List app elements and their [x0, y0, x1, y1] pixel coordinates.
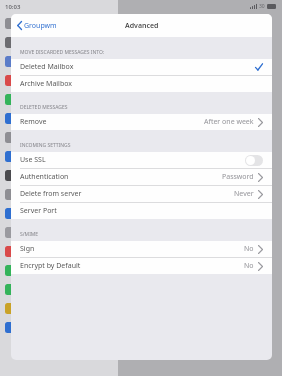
staticText: 10:03 — [5, 3, 21, 11]
staticText: DELETED MESSAGES — [20, 104, 68, 111]
staticText: Battery — [21, 153, 42, 161]
staticText: No — [244, 261, 254, 271]
staticText: Wallet — [21, 210, 39, 218]
staticText: Password — [222, 172, 254, 182]
staticText: Deleted Mailbox — [20, 62, 74, 72]
button[interactable]: Remove — [11, 114, 272, 130]
button[interactable]: Use SSL toggle — [245, 155, 263, 166]
staticText: Advanced — [125, 21, 159, 31]
staticText: 30 — [259, 3, 265, 10]
staticText: Passwords — [21, 229, 52, 237]
staticText: Archive Mailbox — [20, 79, 73, 89]
staticText: After one week — [204, 117, 254, 127]
staticText: S/MIME — [20, 231, 39, 238]
button[interactable]: Sign — [11, 241, 272, 258]
staticText: Groupwm — [24, 21, 57, 31]
staticText: Sign — [20, 244, 35, 254]
staticText: Accessibility — [21, 58, 55, 66]
button[interactable]: Delete from server — [11, 186, 272, 203]
button[interactable]: Encrypt by Default — [11, 258, 272, 274]
staticText: App Store — [21, 191, 49, 199]
staticText: Mail — [21, 248, 33, 256]
button[interactable]: Use SSL — [11, 152, 272, 169]
button[interactable]: Authentication — [11, 169, 272, 186]
staticText: General — [21, 20, 44, 28]
staticText: INCOMING SETTINGS — [20, 142, 71, 149]
staticText: MOVE DISCARDED MESSAGES INTO: — [20, 49, 105, 56]
staticText: Wallpaper — [21, 77, 50, 85]
staticText: Encrypt by Default — [20, 261, 81, 271]
staticText: Remove — [20, 117, 47, 127]
staticText: Delete from server — [20, 189, 82, 199]
staticText: Use SSL — [20, 155, 46, 165]
staticText: Never — [234, 189, 254, 199]
staticText: Authentication — [20, 172, 69, 182]
staticText: Contacts — [21, 267, 46, 275]
staticText: Apple Pencil — [21, 115, 56, 123]
button[interactable]: Deleted Mailbox — [11, 59, 272, 76]
button[interactable]: Server Port — [11, 203, 272, 219]
staticText: Server Port — [20, 206, 57, 216]
button[interactable]: Archive Mailbox — [11, 76, 272, 92]
staticText: Privacy — [21, 172, 42, 180]
button[interactable]: Back to Groupwm — [17, 14, 266, 37]
staticText: No — [244, 244, 254, 254]
